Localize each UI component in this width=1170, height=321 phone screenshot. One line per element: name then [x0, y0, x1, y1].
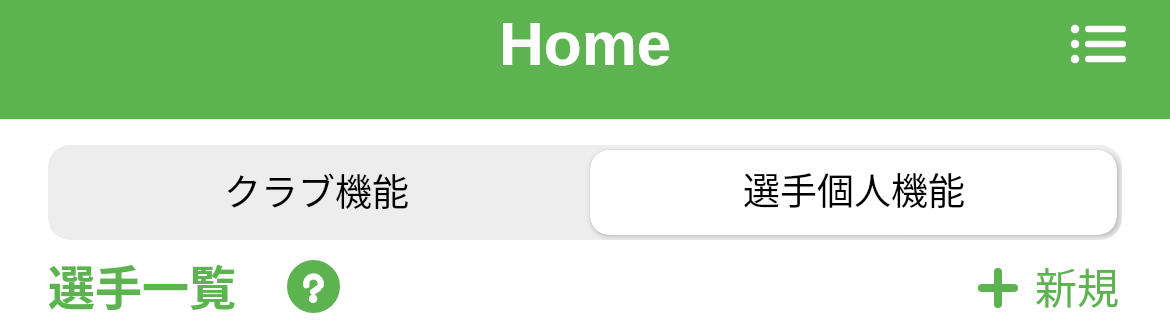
button[interactable]: 選手個人機能	[590, 150, 1117, 235]
staticText: 選手一覧	[48, 250, 236, 313]
button[interactable]: 新規	[976, 258, 1120, 321]
staticText: 選手個人機能	[743, 162, 965, 216]
staticText: クラブ機能	[224, 163, 409, 217]
button[interactable]: Help	[287, 260, 340, 313]
button[interactable]: Menu	[1063, 9, 1135, 81]
button[interactable]: クラブ機能	[48, 145, 585, 240]
staticText: Home	[499, 9, 672, 78]
staticText: 新規	[1035, 255, 1120, 316]
